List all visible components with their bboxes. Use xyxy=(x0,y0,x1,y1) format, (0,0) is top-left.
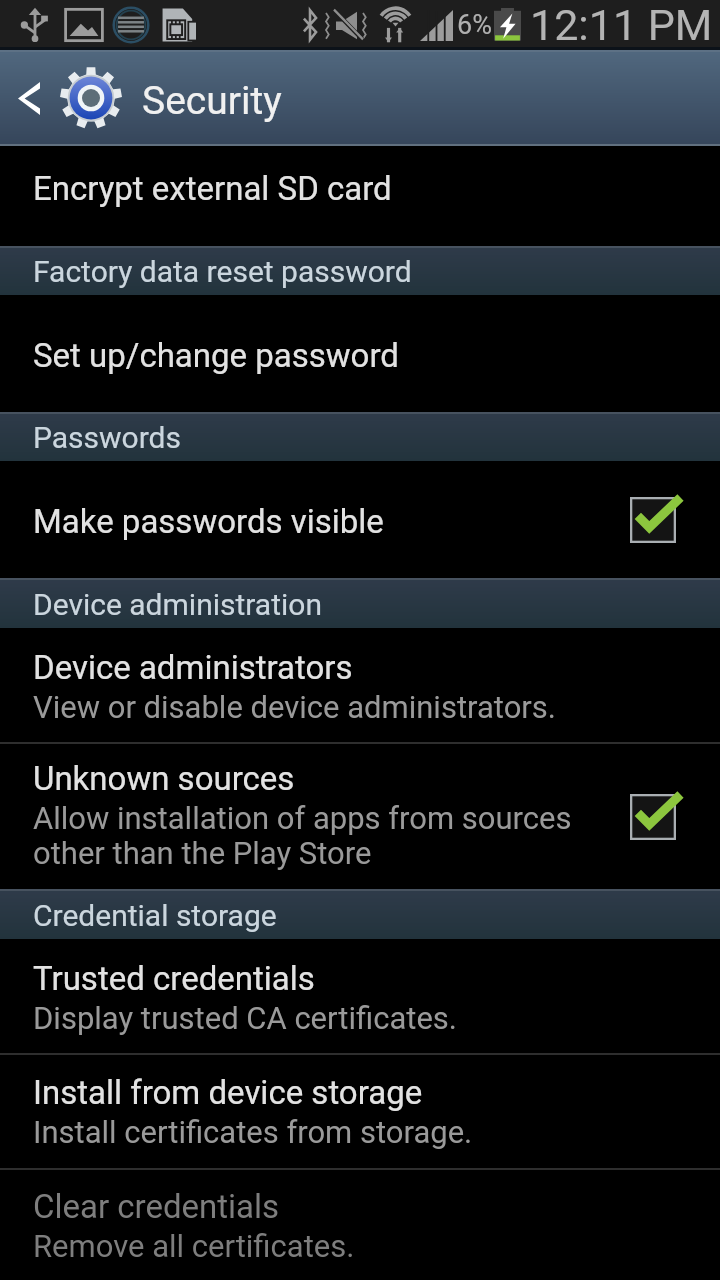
staticText: Display trusted CA certificates. xyxy=(33,1000,458,1036)
staticText: Set up/change password xyxy=(33,336,399,375)
staticText: View or disable device administrators. xyxy=(33,689,556,725)
staticText: 12:11 PM xyxy=(530,0,713,50)
other: Settings xyxy=(60,67,122,129)
other: Checked xyxy=(630,497,681,543)
staticText: Passwords xyxy=(33,420,181,455)
staticText: Clear credentials xyxy=(33,1187,280,1226)
staticText: 6% xyxy=(457,9,492,41)
staticText: Remove all certificates. xyxy=(33,1228,355,1264)
button[interactable]: Unknown sources xyxy=(0,744,720,889)
staticText: Unknown sources xyxy=(33,759,295,798)
staticText: Make passwords visible xyxy=(33,502,384,541)
button[interactable]: Trusted credentials xyxy=(0,939,720,1053)
button[interactable]: Encrypt external SD card xyxy=(0,146,720,246)
staticText: Allow installation of apps from sources … xyxy=(33,800,572,871)
staticText: Factory data reset password xyxy=(33,254,412,289)
staticText: Install certificates from storage. xyxy=(33,1114,473,1150)
button[interactable]: Device administrators xyxy=(0,628,720,742)
other: Checked xyxy=(630,794,681,840)
staticText: Encrypt external SD card xyxy=(33,169,392,208)
button[interactable]: Navigate up xyxy=(0,50,720,146)
button[interactable]: Clear credentials xyxy=(0,1170,720,1280)
staticText: Security xyxy=(142,78,282,124)
button[interactable]: Set up/change password xyxy=(0,295,720,412)
staticText: Credential storage xyxy=(33,898,277,933)
staticText: Trusted credentials xyxy=(33,959,315,998)
staticText: Device administration xyxy=(33,587,322,622)
staticText: Device administrators xyxy=(33,648,353,687)
button[interactable]: Install from device storage xyxy=(0,1055,720,1168)
button[interactable]: Navigate up xyxy=(0,50,58,146)
staticText: Install from device storage xyxy=(33,1073,423,1112)
button[interactable]: Make passwords visible xyxy=(0,461,720,578)
